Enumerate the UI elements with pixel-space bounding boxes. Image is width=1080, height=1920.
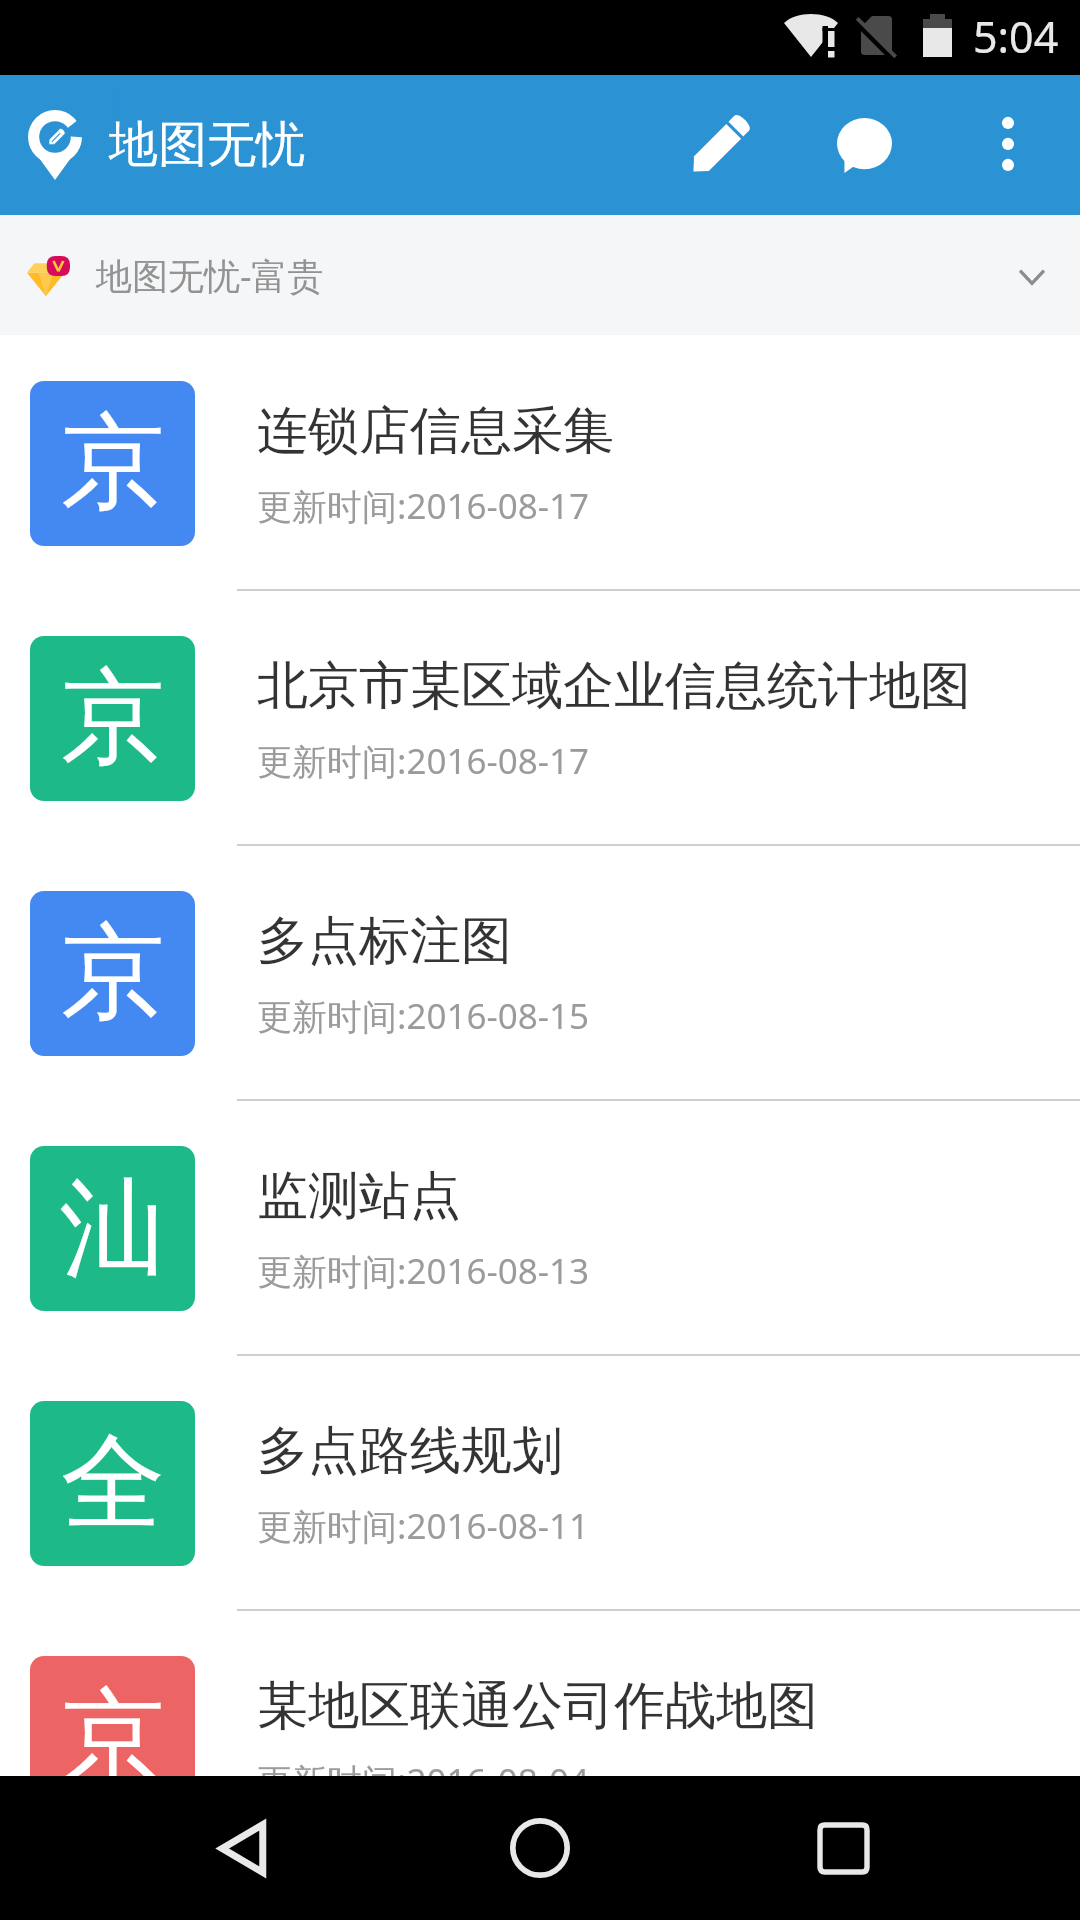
staticText: 地图无忧-富贵: [96, 251, 324, 300]
staticText: 京: [61, 398, 165, 529]
button[interactable]: Edit: [660, 85, 780, 205]
staticText: 京: [61, 653, 165, 784]
staticText: 北京市某区域企业信息统计地图: [257, 654, 971, 718]
button[interactable]: 京: [0, 845, 1080, 1100]
staticText: 京: [61, 1673, 165, 1776]
staticText: 全: [61, 1418, 165, 1549]
button[interactable]: Back: [171, 1776, 315, 1920]
button[interactable]: Recents: [771, 1776, 915, 1920]
staticText: 连锁店信息采集: [257, 399, 614, 463]
staticText: 京: [61, 908, 165, 1039]
staticText: 更新时间:2016-08-04: [257, 1757, 590, 1776]
button[interactable]: More options: [948, 85, 1068, 205]
staticText: 多点路线规划: [257, 1419, 563, 1483]
button[interactable]: 全: [0, 1355, 1080, 1610]
staticText: 某地区联通公司作战地图: [257, 1674, 818, 1738]
staticText: 5:04: [973, 7, 1059, 66]
staticText: 更新时间:2016-08-15: [257, 992, 590, 1040]
staticText: 更新时间:2016-08-13: [257, 1247, 590, 1295]
staticText: 汕: [61, 1163, 165, 1294]
button[interactable]: 京: [0, 335, 1080, 590]
staticText: 地图无忧: [109, 114, 305, 176]
staticText: 监测站点: [257, 1164, 461, 1228]
button[interactable]: 地图无忧-富贵, switch account: [0, 215, 1080, 335]
staticText: 多点标注图: [257, 909, 512, 973]
button[interactable]: Messages: [804, 85, 924, 205]
button[interactable]: 地图无忧 home: [6, 85, 104, 205]
staticText: 更新时间:2016-08-17: [257, 737, 590, 785]
staticText: 更新时间:2016-08-11: [257, 1502, 590, 1550]
button[interactable]: 京: [0, 1610, 1080, 1776]
button[interactable]: Home: [468, 1776, 612, 1920]
staticText: 更新时间:2016-08-17: [257, 482, 590, 530]
button[interactable]: 汕: [0, 1100, 1080, 1355]
button[interactable]: 京: [0, 590, 1080, 845]
